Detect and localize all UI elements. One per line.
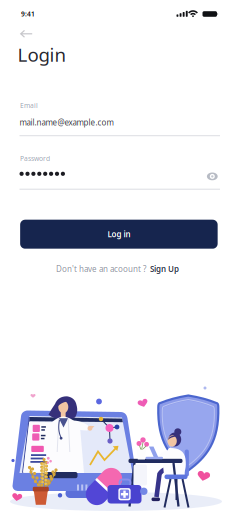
staticText: Sign Up [150, 264, 179, 274]
staticText: Login [17, 42, 66, 67]
staticText: Log in [107, 229, 130, 239]
button[interactable]: Sign Up [150, 264, 179, 274]
button[interactable]: Show password [202, 169, 222, 183]
staticText: Password [20, 154, 50, 163]
button[interactable]: Log in [20, 220, 218, 249]
staticText: Don't have an acoount ? [56, 264, 146, 274]
staticText: 9:41 [21, 10, 35, 18]
staticText: mail.name@example.com [19, 117, 113, 128]
staticText: Email [20, 101, 38, 110]
button[interactable]: Back [20, 30, 33, 38]
